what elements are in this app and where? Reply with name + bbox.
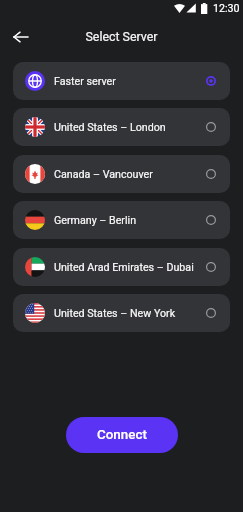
staticText: Faster server — [54, 75, 116, 88]
button[interactable]: United States – New York — [13, 294, 230, 332]
staticText: Germany – Berlin — [54, 214, 137, 227]
staticText: United States – London — [54, 121, 166, 134]
button[interactable]: Back — [13, 29, 29, 45]
staticText: Select Server — [85, 29, 158, 44]
button[interactable]: Germany – Berlin — [13, 201, 230, 239]
button[interactable]: United Arad Emirates – Dubai — [13, 248, 230, 286]
staticText: United Arad Emirates – Dubai — [54, 261, 194, 274]
button[interactable]: Canada – Vancouver — [13, 155, 230, 193]
button[interactable]: Connect — [66, 417, 178, 453]
staticText: 12:30 — [213, 2, 240, 15]
staticText: Canada – Vancouver — [54, 168, 153, 181]
staticText: Connect — [97, 427, 147, 443]
button[interactable]: United States – London — [13, 108, 230, 146]
button[interactable]: Faster server — [13, 62, 230, 100]
staticText: United States – New York — [54, 307, 176, 320]
